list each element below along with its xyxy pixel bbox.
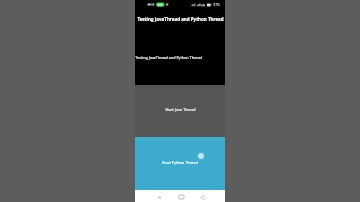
button[interactable]: Back [154,192,164,202]
button[interactable]: Home [176,192,186,202]
staticText: Testing JavaThread and Python Thread [135,55,202,60]
button[interactable]: Start Python Thread [135,137,225,190]
staticText: Testing JavaThread and Python Thread [137,16,224,22]
button[interactable]: Start Java Thread [135,85,225,137]
button[interactable]: Recents [197,192,207,202]
staticText: Start Python Thread [162,160,198,165]
button[interactable]: Testing JavaThread and Python Thread [135,16,225,26]
staticText: Start Java Thread [165,107,196,112]
staticText: 97% [213,2,220,6]
